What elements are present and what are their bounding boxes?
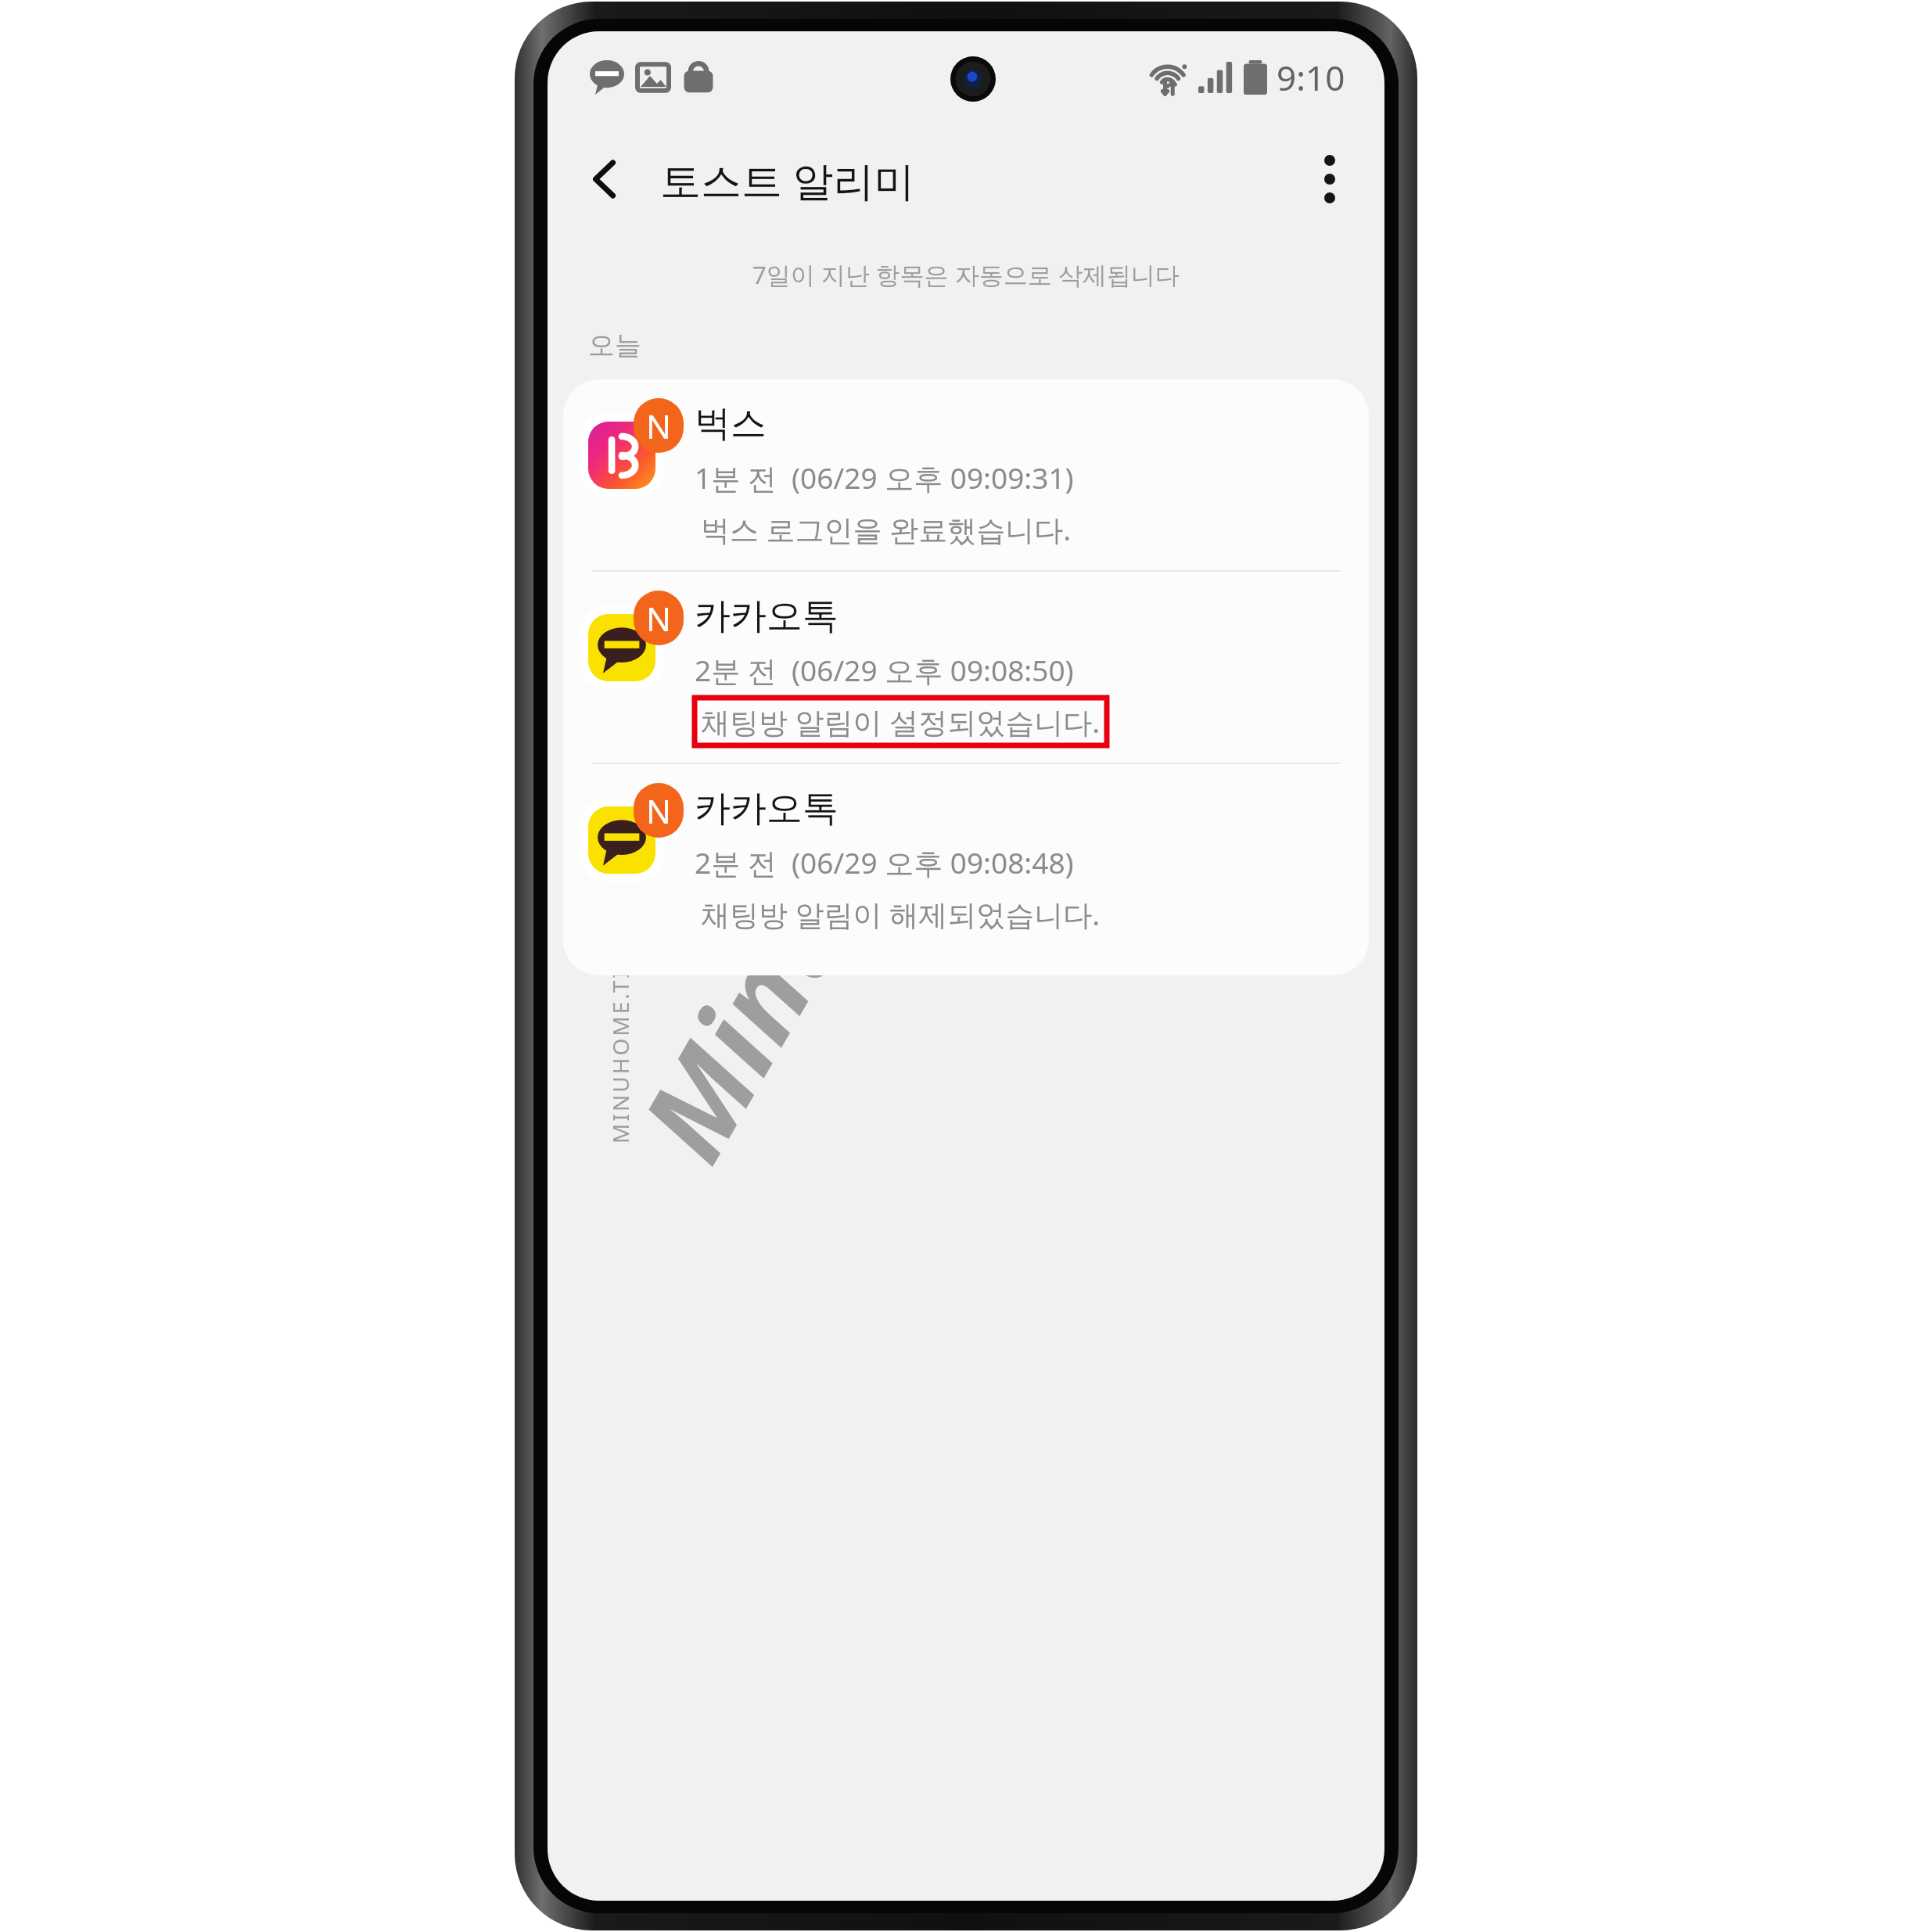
staticText: 채팅방 알림이 설정되었습니다. — [701, 702, 1101, 742]
staticText: 토스트 알리미 — [660, 152, 915, 207]
staticText: 1분 전 (06/29 오후 09:09:31) — [695, 458, 1074, 497]
button[interactable]: N — [563, 764, 1369, 955]
staticText: 2분 전 (06/29 오후 09:08:50) — [695, 650, 1074, 690]
staticText: 9:10 — [1277, 54, 1345, 101]
staticText: 7일이 지난 항목은 자동으로 삭제됩니다 — [548, 258, 1384, 291]
staticText: 벅스 — [695, 401, 767, 447]
staticText: 카카오톡 — [695, 594, 839, 639]
staticText: Minu home — [603, 568, 1052, 1187]
button[interactable]: N — [563, 379, 1369, 570]
staticText: N — [646, 596, 671, 641]
button[interactable]: More options — [1294, 143, 1366, 215]
staticText: 채팅방 알림이 해제되었습니다. — [701, 894, 1101, 934]
staticText: 오늘 — [588, 329, 641, 362]
staticText: 벅스 로그인을 완료했습니다. — [701, 509, 1072, 549]
staticText: N — [646, 404, 671, 448]
staticText: 카카오톡 — [695, 786, 839, 831]
staticText: 2분 전 (06/29 오후 09:08:48) — [695, 842, 1074, 882]
button[interactable]: Back — [569, 143, 641, 215]
staticText: MINUHOME.TISTORY.COM — [605, 826, 635, 1144]
staticText: N — [646, 788, 671, 833]
button[interactable]: N — [563, 572, 1369, 763]
